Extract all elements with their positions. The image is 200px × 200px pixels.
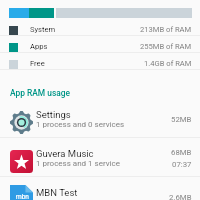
- other: MBN Test file: [10, 185, 33, 200]
- button[interactable]: Free: [0, 53, 200, 70]
- other: Settings app: [10, 111, 33, 134]
- staticText: System: [30, 25, 56, 34]
- staticText: 52MB: [171, 115, 192, 124]
- staticText: Guvera Music: [36, 148, 94, 159]
- staticText: 07:37: [172, 160, 192, 169]
- button[interactable]: Settings app: [0, 99, 200, 138]
- other: Guvera Music: [10, 150, 33, 173]
- staticText: Settings: [36, 109, 71, 120]
- button[interactable]: Guvera Music: [0, 138, 200, 177]
- button[interactable]: Apps: [0, 36, 200, 53]
- button[interactable]: System: [0, 19, 200, 36]
- staticText: Free: [30, 59, 45, 68]
- staticText: App RAM usage: [10, 88, 71, 98]
- staticText: mbn: [16, 193, 29, 200]
- staticText: 1 process and 1 service: [36, 159, 120, 168]
- staticText: 213MB of RAM: [140, 25, 192, 34]
- button[interactable]: MBN Test file: [0, 177, 200, 200]
- staticText: 255MB of RAM: [140, 42, 192, 51]
- staticText: MBN Test: [36, 187, 78, 198]
- staticText: 1 process and 0 services: [36, 120, 125, 129]
- staticText: 2.6MB: [169, 193, 192, 200]
- staticText: 1.4GB of RAM: [144, 59, 192, 68]
- staticText: 68MB: [171, 148, 192, 157]
- staticText: Apps: [30, 42, 48, 51]
